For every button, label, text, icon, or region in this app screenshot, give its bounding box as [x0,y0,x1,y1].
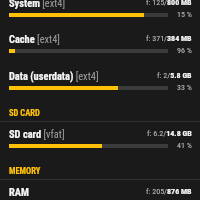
staticText: 96 % [177,46,192,55]
staticText: SD CARD [9,108,40,118]
staticText: Data (userdata) [ext4] [9,70,99,82]
staticText: SD card [vfat] [9,128,65,140]
staticText: Cache [ext4] [9,33,60,45]
staticText: f: 205/876 MB [146,187,192,196]
staticText: f: 2/5.8 GB [157,71,192,80]
staticText: f: 6.2/14.8 GB [147,129,192,138]
staticText: 41 % [177,141,192,150]
staticText: f: 371/384 MB [146,34,192,43]
staticText: RAM [9,186,29,198]
staticText: MEMORY [9,166,41,176]
staticText: f: 125/800 MB [146,0,192,7]
staticText: System [ext4] [9,0,66,9]
staticText: 15 % [177,10,192,19]
staticText: 33 % [177,83,192,92]
